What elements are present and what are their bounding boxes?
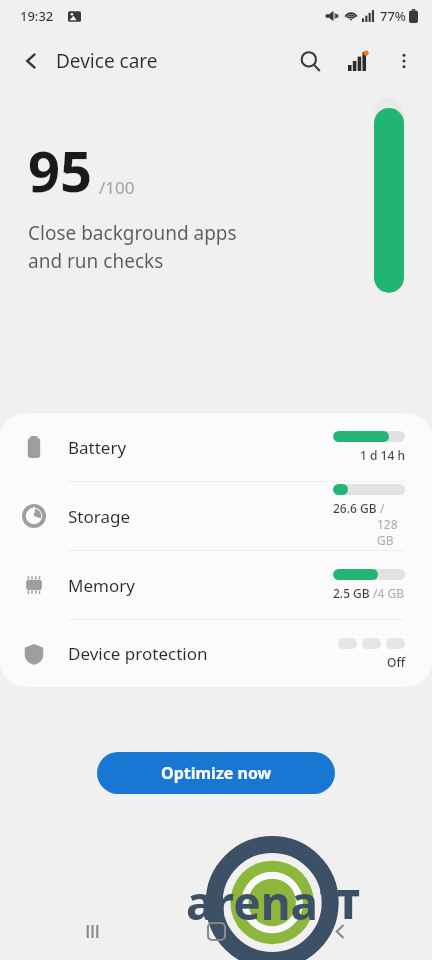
staticText: 95 [28,132,93,208]
button[interactable]: Back [10,39,54,83]
staticText: arena [186,871,319,934]
staticText: Memory [68,574,333,597]
staticText: Device protection [68,642,333,665]
button[interactable]: Recents [70,909,114,953]
staticText: 19:32 [20,7,54,25]
staticText: Close background apps and run checks [28,220,237,274]
staticText: 77% [380,7,406,25]
staticText: 26.6 GB [333,500,377,516]
staticText: Battery [68,436,333,459]
button[interactable]: Storage [0,482,432,550]
button[interactable]: Statistics [334,37,382,85]
button[interactable]: Device protection [0,620,432,687]
staticText: IT [319,876,361,930]
staticText: Optimize now [161,762,272,784]
button[interactable]: Battery [0,413,432,481]
button[interactable]: Home [194,909,238,953]
staticText: /100 [99,176,135,199]
staticText: 1 d 14 h [360,447,405,463]
button[interactable]: Optimize now [97,752,335,794]
staticText: /128 GB [377,500,405,548]
staticText: /4 GB [370,585,405,601]
staticText: Storage [68,505,333,528]
staticText: Off [387,654,405,670]
button[interactable]: Back [318,909,362,953]
button[interactable]: More options [382,39,426,83]
staticText: 2.5 GB [333,585,370,601]
button[interactable]: Search [286,37,334,85]
button[interactable]: Memory [0,551,432,619]
staticText: Device care [56,48,158,74]
